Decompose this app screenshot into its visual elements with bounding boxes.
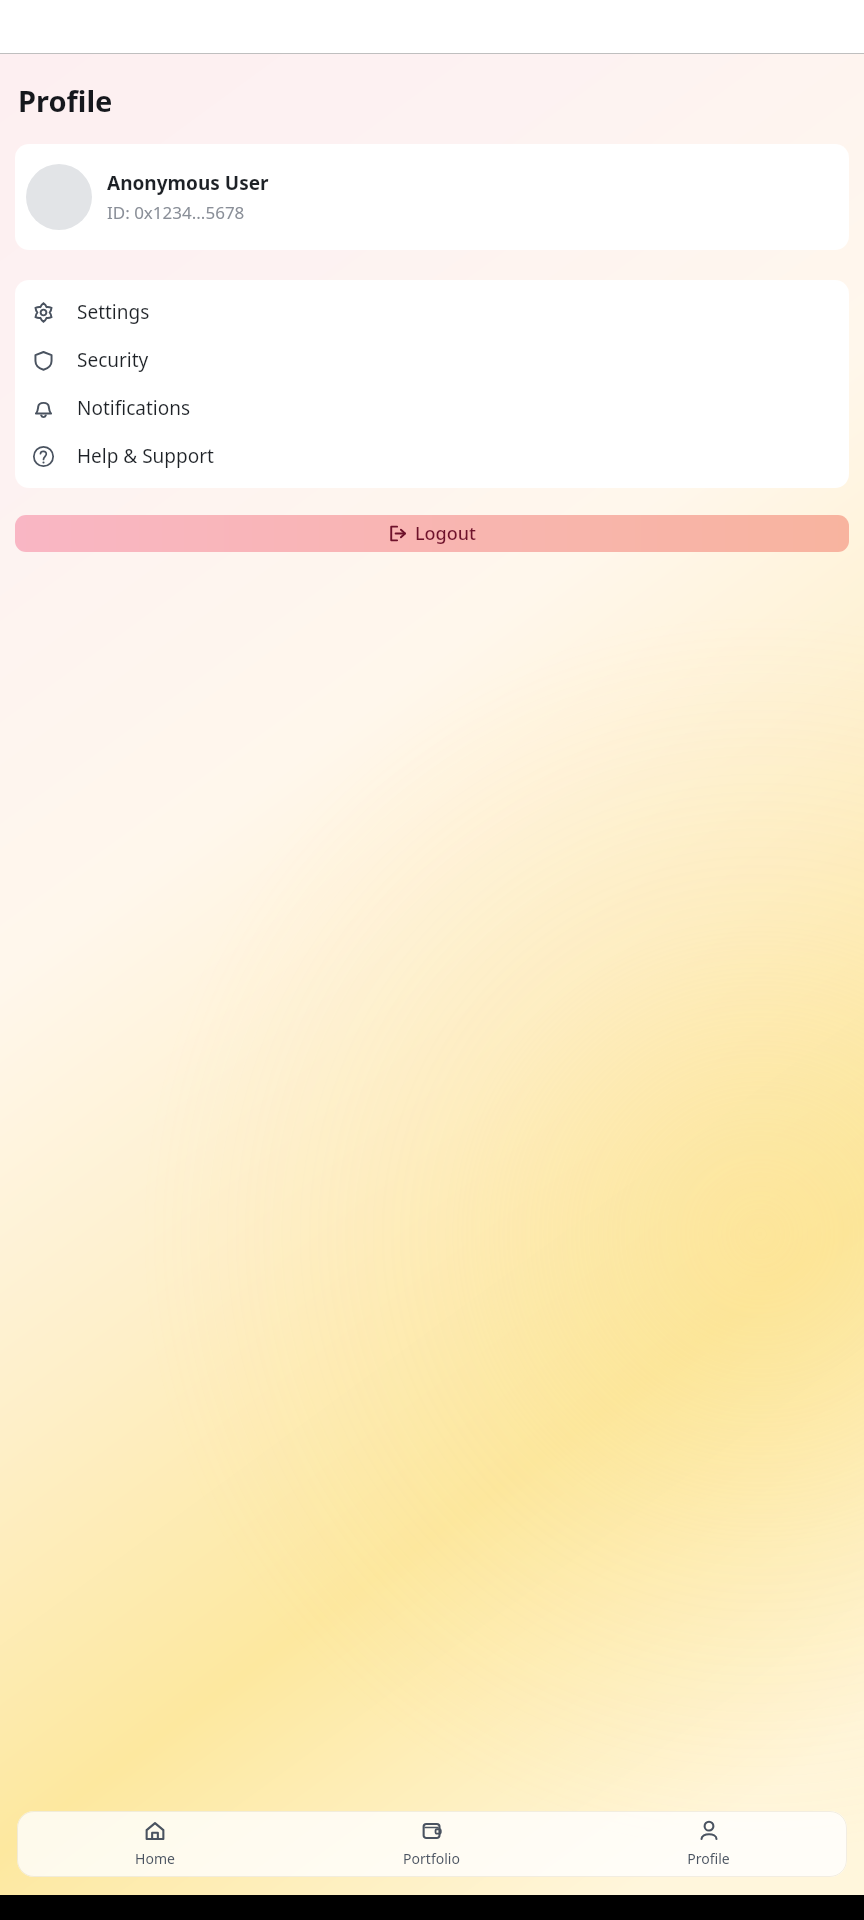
- staticText: Help & Support: [77, 443, 214, 469]
- button[interactable]: Home: [17, 1811, 293, 1877]
- staticText: Profile: [18, 81, 113, 120]
- button[interactable]: Anonymous User: [15, 144, 849, 250]
- staticText: Logout: [415, 521, 476, 546]
- button[interactable]: Settings: [15, 288, 849, 336]
- staticText: Security: [77, 347, 149, 373]
- button[interactable]: Portfolio: [293, 1811, 570, 1877]
- staticText: Anonymous User: [107, 170, 269, 196]
- staticText: ID: 0x1234...5678: [107, 201, 245, 224]
- button[interactable]: Profile: [570, 1811, 847, 1877]
- staticText: Settings: [77, 299, 150, 325]
- button[interactable]: Logout: [15, 515, 849, 552]
- button[interactable]: Security: [15, 336, 849, 384]
- staticText: Notifications: [77, 395, 191, 421]
- staticText: Home: [135, 1849, 175, 1868]
- staticText: Portfolio: [403, 1849, 460, 1868]
- button[interactable]: Help & Support: [15, 432, 849, 480]
- staticText: Profile: [687, 1849, 730, 1868]
- button[interactable]: Notifications: [15, 384, 849, 432]
